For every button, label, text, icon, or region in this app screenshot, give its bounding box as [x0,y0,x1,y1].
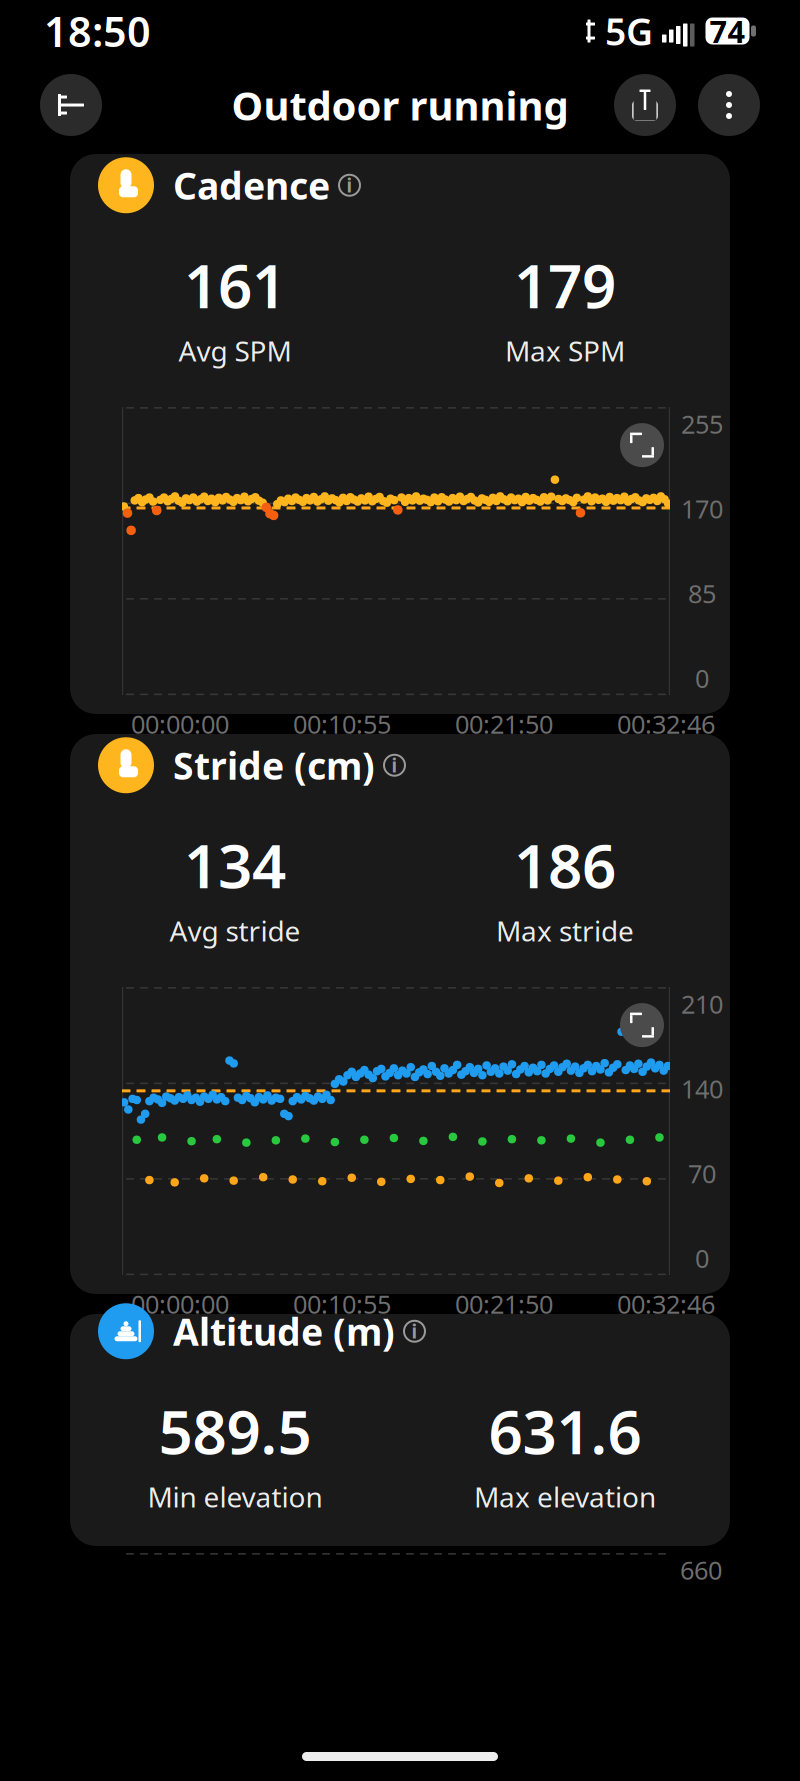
staticText: Stride (cm) [173,740,375,790]
staticText: 589.5 [158,1391,311,1471]
staticText: 0 [695,661,709,695]
staticText: 00:00:00 [131,707,229,741]
staticText: Outdoor running [231,78,568,131]
staticText: Avg SPM [178,332,291,369]
button[interactable]: About Cadence [339,175,360,196]
staticText: i [346,173,352,198]
staticText: 0 [695,1241,709,1275]
staticText: 70 [688,1157,716,1190]
staticText: 255 [681,407,723,441]
staticText: 00:21:50 [455,1287,553,1321]
staticText: 5G [605,6,653,56]
staticText: 00:10:55 [293,1287,391,1321]
staticText: 00:10:55 [293,707,391,741]
staticText: 85 [688,577,716,610]
staticText: 00:00:00 [131,1287,229,1321]
staticText: Max elevation [474,1478,656,1515]
staticText: 179 [514,245,616,325]
staticText: Min elevation [147,1478,322,1515]
button[interactable]: About Altitude (m) [404,1321,425,1342]
button[interactable]: About Stride (cm) [384,755,405,776]
staticText: 210 [681,987,723,1021]
button[interactable]: Expand chart [620,1003,664,1047]
button[interactable]: Share [614,74,676,136]
staticText: 631.6 [488,1391,641,1471]
staticText: 00:32:46 [617,707,715,741]
staticText: 74 [709,11,745,51]
staticText: Max stride [496,912,634,949]
staticText: i [411,1319,417,1344]
staticText: 170 [681,492,723,525]
staticText: 18:50 [44,4,151,58]
staticText: 00:32:46 [617,1287,715,1321]
staticText: Cadence [173,160,330,210]
staticText: 161 [184,245,286,325]
staticText: 660 [680,1553,722,1587]
staticText: 186 [514,825,616,905]
staticText: Avg stride [169,912,300,949]
button[interactable]: Expand chart [620,423,664,467]
staticText: Altitude (m) [173,1306,395,1356]
staticText: 00:21:50 [455,707,553,741]
staticText: Max SPM [505,332,625,369]
button[interactable]: More options [698,74,760,136]
staticText: 140 [681,1072,723,1105]
staticText: i [391,753,397,778]
staticText: 134 [184,825,286,905]
button[interactable]: Back [40,74,102,136]
